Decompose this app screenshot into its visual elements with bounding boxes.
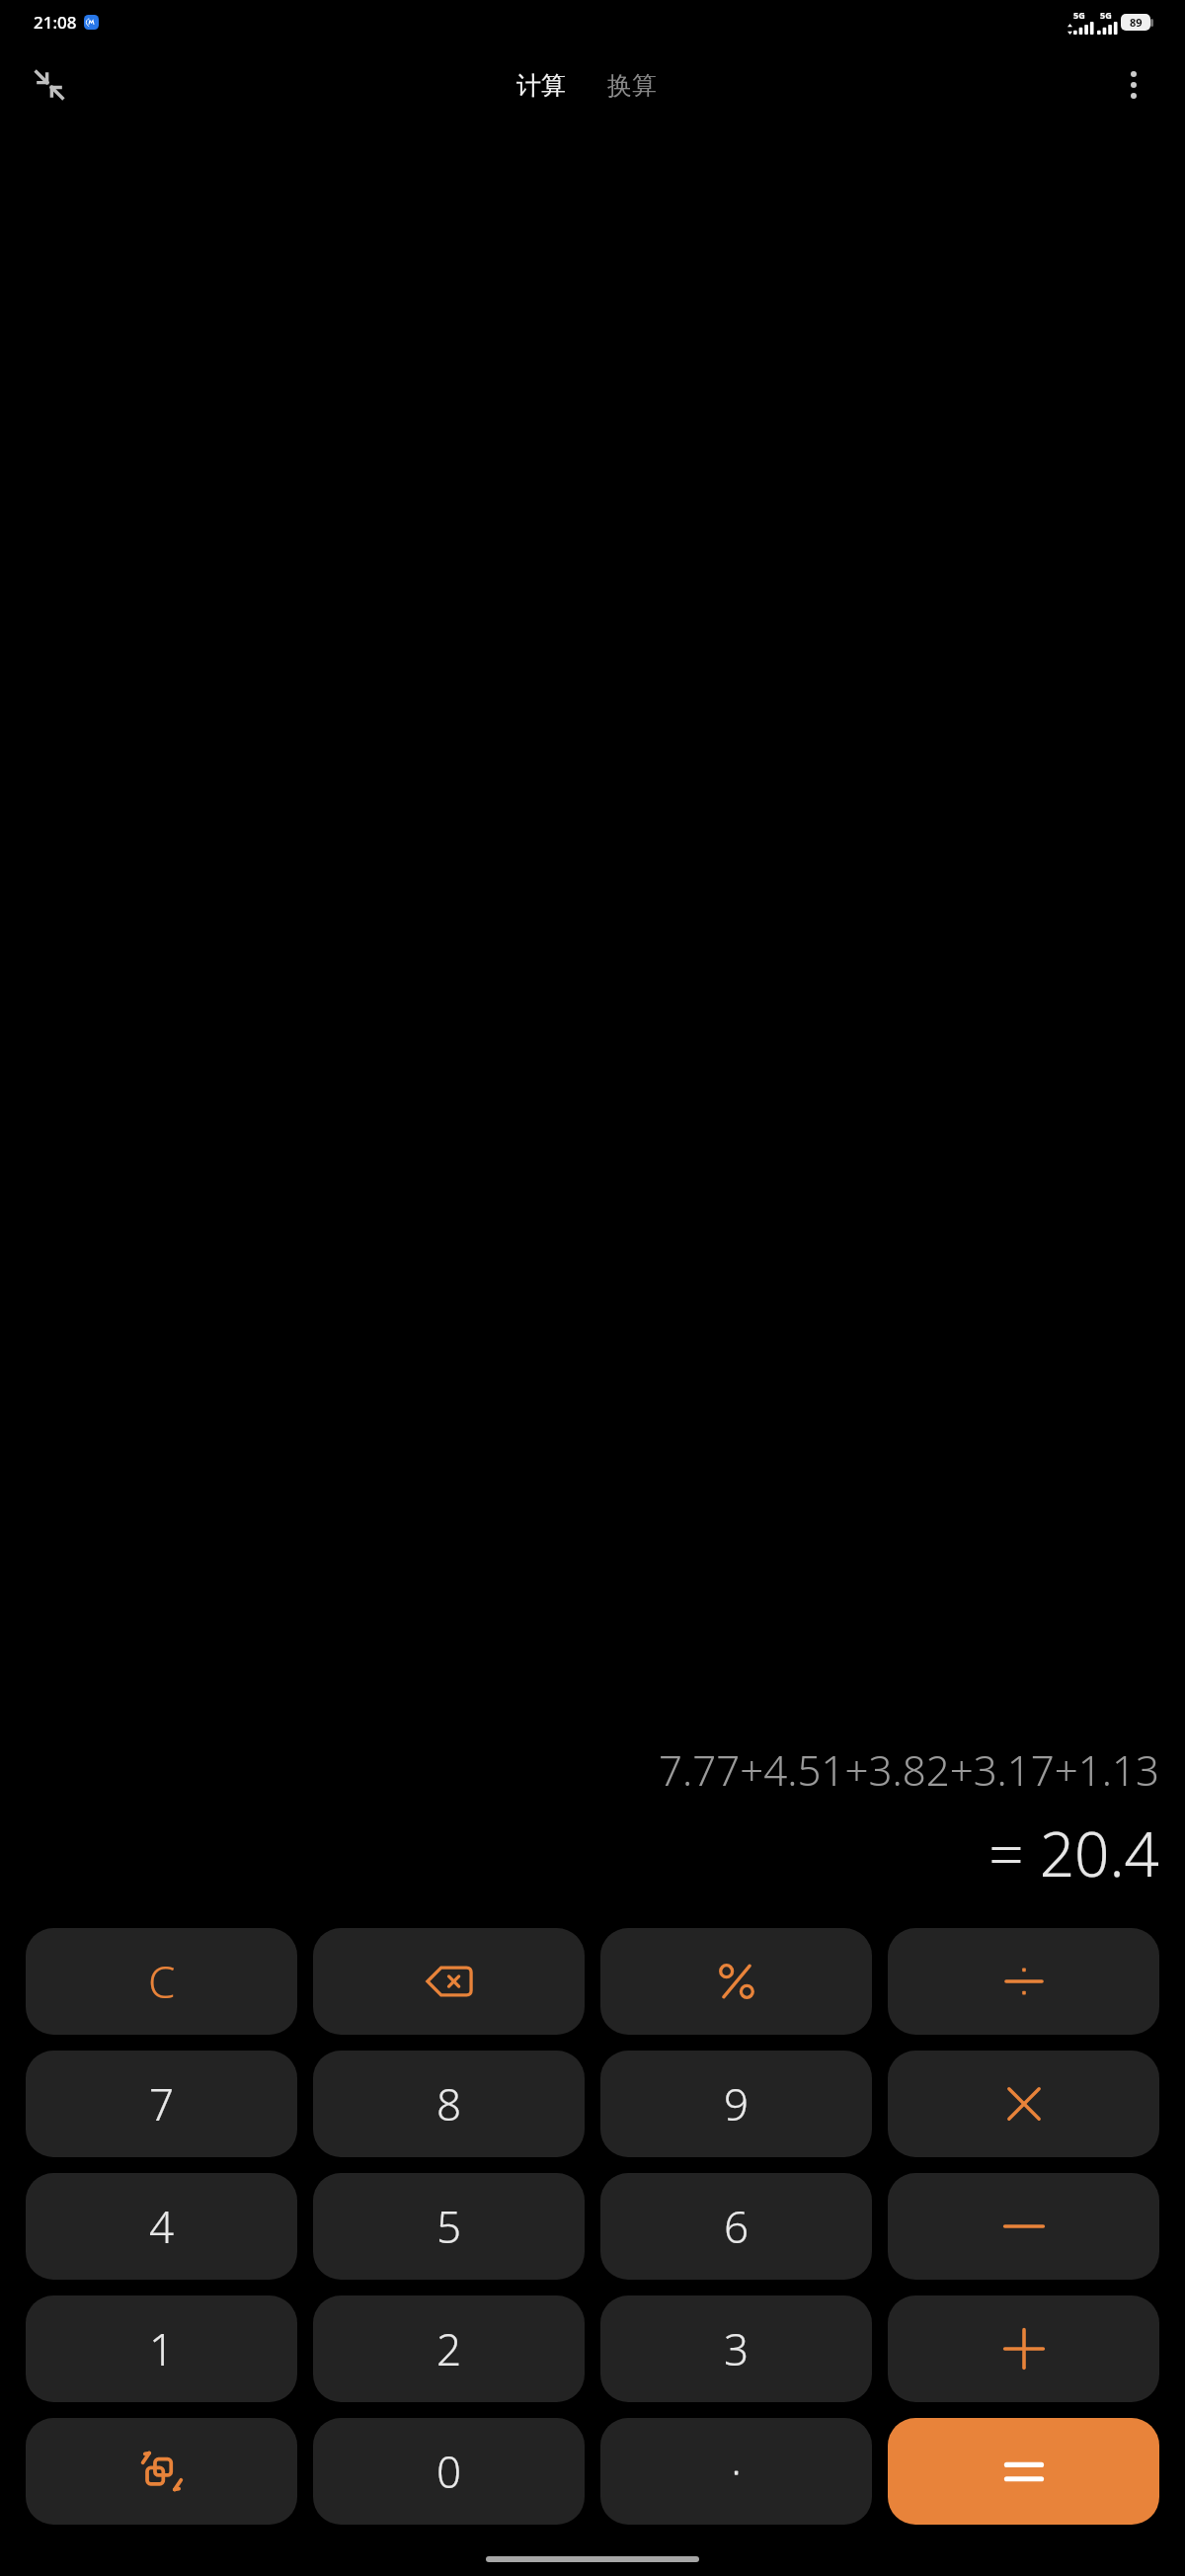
button[interactable]: C	[26, 1928, 297, 2035]
button[interactable]: 4	[26, 2173, 297, 2280]
staticText: 21:08	[34, 11, 77, 34]
staticText: 换算	[607, 70, 657, 101]
button[interactable]: 7	[26, 2051, 297, 2157]
button[interactable]: 8	[313, 2051, 585, 2157]
button[interactable]: Divide	[888, 1928, 1159, 2035]
staticText: 7.77+4.51+3.82+3.17+1.13	[659, 1741, 1159, 1798]
button[interactable]: Multiply	[888, 2051, 1159, 2157]
staticText: 9	[724, 2074, 750, 2133]
button[interactable]: 计算	[505, 64, 578, 107]
button[interactable]: Minus	[888, 2173, 1159, 2280]
button[interactable]: Convert	[26, 2418, 297, 2525]
staticText: 8	[436, 2074, 462, 2133]
button[interactable]: More options	[1102, 53, 1165, 117]
staticText: 5	[436, 2197, 462, 2256]
button[interactable]: 0	[313, 2418, 585, 2525]
button[interactable]: Percent	[600, 1928, 872, 2035]
staticText: 5G	[1100, 9, 1112, 21]
staticText: 7	[149, 2074, 175, 2133]
button[interactable]: 3	[600, 2295, 872, 2402]
button[interactable]: 5	[313, 2173, 585, 2280]
button[interactable]: 2	[313, 2295, 585, 2402]
staticText: 2	[436, 2319, 462, 2378]
button[interactable]: Collapse	[18, 53, 81, 117]
button[interactable]: 1	[26, 2295, 297, 2402]
button[interactable]: 9	[600, 2051, 872, 2157]
button[interactable]: Backspace	[313, 1928, 585, 2035]
button[interactable]: 6	[600, 2173, 872, 2280]
button[interactable]: Equals	[888, 2418, 1159, 2525]
staticText: 5G	[1073, 9, 1085, 21]
staticText: = 20.4	[988, 1811, 1159, 1894]
staticText: 6	[724, 2197, 750, 2256]
button[interactable]: Decimal point	[600, 2418, 872, 2525]
button[interactable]: 换算	[595, 64, 669, 107]
staticText: 1	[149, 2319, 175, 2378]
staticText: 3	[724, 2319, 750, 2378]
staticText: C	[148, 1952, 176, 2011]
staticText: 计算	[516, 70, 566, 101]
staticText: 89	[1130, 15, 1143, 30]
staticText: 0	[436, 2442, 462, 2501]
button[interactable]: Plus	[888, 2295, 1159, 2402]
staticText: 4	[149, 2197, 175, 2256]
